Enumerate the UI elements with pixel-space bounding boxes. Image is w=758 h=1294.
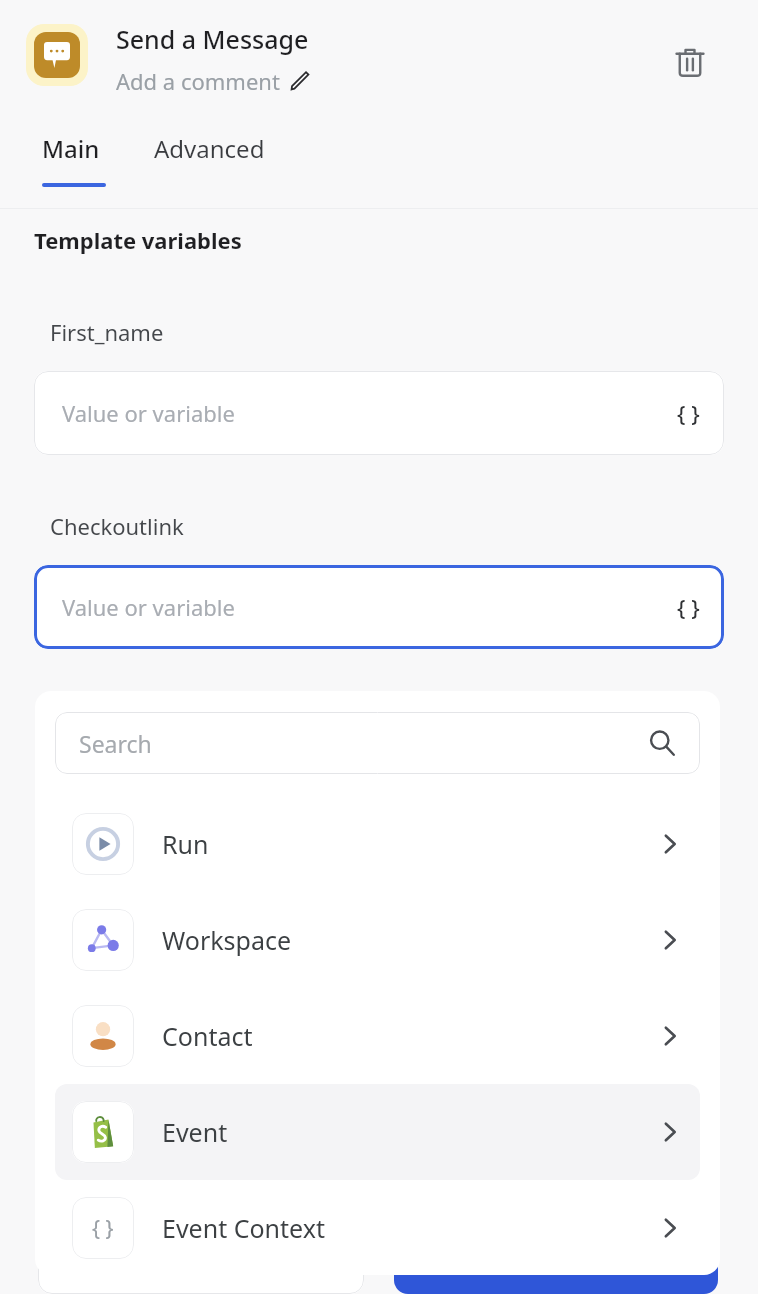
staticText: Checkoutlink: [50, 511, 184, 541]
staticText: First_name: [50, 317, 164, 347]
button[interactable]: [38, 1232, 364, 1294]
staticText: Main: [42, 132, 100, 165]
button[interactable]: Workspace: [55, 892, 700, 988]
button[interactable]: Search: [55, 712, 700, 774]
button[interactable]: Delete: [660, 32, 720, 92]
staticText: Event Context: [162, 1211, 325, 1245]
button[interactable]: { }: [55, 1180, 700, 1275]
button[interactable]: Add a comment: [116, 66, 310, 96]
staticText: { }: [677, 592, 700, 622]
staticText: Search: [79, 728, 152, 759]
staticText: Value or variable: [62, 592, 235, 622]
button[interactable]: Event: [55, 1084, 700, 1180]
staticText: Template variables: [34, 225, 242, 255]
staticText: { }: [92, 1214, 114, 1243]
other: Edit comment: [290, 71, 310, 91]
button[interactable]: Value or variable: [34, 371, 724, 455]
staticText: Contact: [162, 1019, 253, 1053]
staticText: Send a Message: [116, 22, 309, 56]
staticText: { }: [677, 398, 700, 428]
button[interactable]: App icon: [26, 24, 88, 86]
button[interactable]: Main: [42, 132, 106, 187]
staticText: Run: [162, 827, 209, 861]
button[interactable]: [394, 1232, 718, 1294]
staticText: Value or variable: [62, 398, 235, 428]
button[interactable]: Advanced: [154, 132, 265, 165]
staticText: Workspace: [162, 923, 292, 957]
button[interactable]: Contact: [55, 988, 700, 1084]
staticText: Event: [162, 1115, 228, 1149]
button[interactable]: Value or variable: [34, 565, 724, 649]
other: Search: [648, 729, 676, 757]
button[interactable]: Run: [55, 796, 700, 892]
staticText: Advanced: [154, 132, 265, 165]
staticText: Add a comment: [116, 66, 280, 96]
